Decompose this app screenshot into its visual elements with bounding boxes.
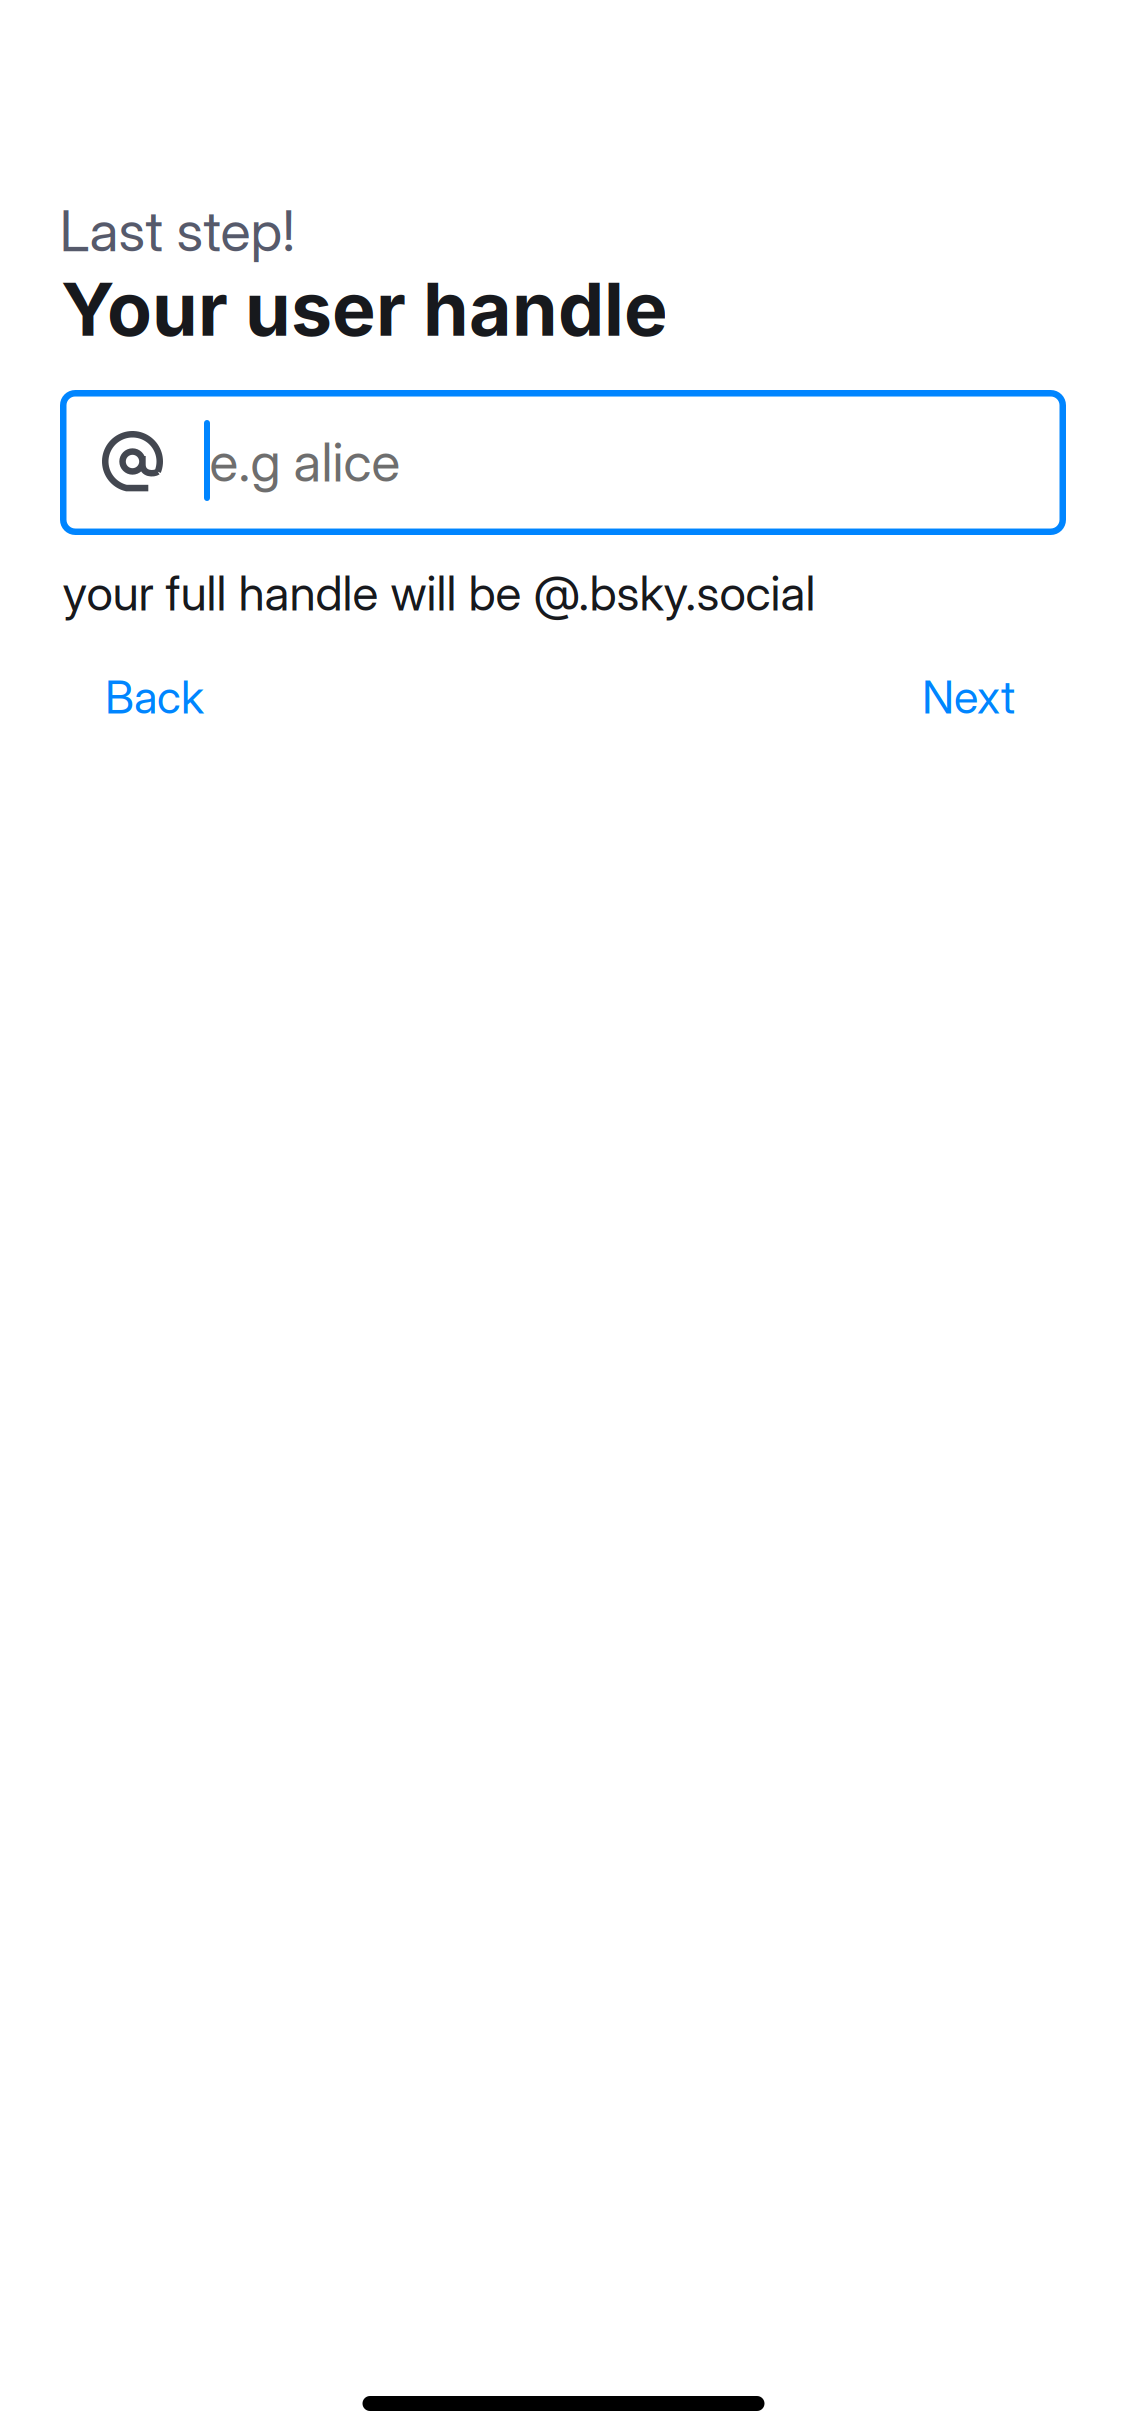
staticText: Back xyxy=(105,670,204,724)
staticText: your full handle will be @.bsky.social xyxy=(62,564,815,622)
staticText: Last step! xyxy=(59,197,294,265)
staticText: Next xyxy=(922,670,1015,724)
staticText: Your user handle xyxy=(61,265,668,353)
button[interactable]: Back xyxy=(59,650,250,744)
button[interactable]: Next xyxy=(876,650,1061,744)
staticText: e.g alice xyxy=(209,430,400,494)
button[interactable]: User handle xyxy=(60,390,1066,535)
